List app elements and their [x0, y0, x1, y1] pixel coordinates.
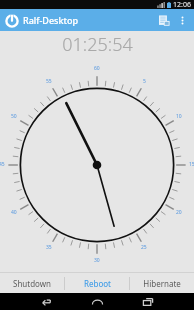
staticText: 55: [46, 78, 52, 85]
staticText: 30: [94, 257, 100, 264]
staticText: 50: [11, 113, 17, 120]
button[interactable]: Home: [85, 293, 109, 310]
button[interactable]: Shutdown: [0, 273, 64, 293]
staticText: 15: [189, 161, 194, 168]
button[interactable]: Back: [34, 293, 58, 310]
other: App icon: [2, 11, 21, 30]
staticText: 40: [11, 209, 17, 216]
staticText: 12:06: [173, 0, 191, 9]
staticText: Shutdown: [13, 278, 51, 289]
staticText: Hibernate: [143, 278, 181, 289]
staticText: 45: [0, 161, 5, 168]
staticText: 5: [143, 78, 146, 85]
button[interactable]: Reboot: [65, 273, 129, 293]
staticText: 01:25:54: [62, 32, 133, 57]
staticText: 60: [94, 65, 100, 72]
button[interactable]: Hibernate: [130, 273, 194, 293]
staticText: 10: [176, 113, 182, 120]
staticText: Ralf-Desktop: [23, 14, 79, 26]
staticText: 20: [176, 209, 182, 216]
staticText: Reboot: [84, 278, 111, 289]
staticText: 25: [141, 244, 147, 251]
button[interactable]: Log: [154, 10, 174, 30]
button[interactable]: More options: [174, 12, 191, 29]
staticText: 35: [46, 244, 52, 251]
button[interactable]: Recent apps: [136, 293, 160, 310]
